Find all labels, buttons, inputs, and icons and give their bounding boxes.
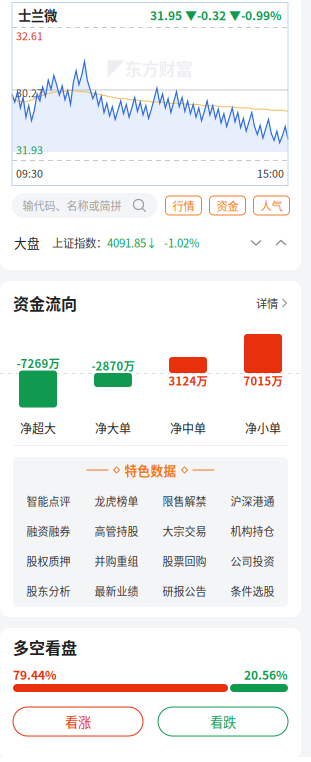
button[interactable]: 最新业绩 (82, 576, 150, 606)
staticText: 研报公告 (162, 583, 206, 599)
staticText: 79.44% (13, 666, 57, 683)
button[interactable]: 融资融券 (14, 516, 82, 546)
staticText: 4091.85↓ (107, 234, 157, 251)
button[interactable]: 看涨 (13, 707, 143, 736)
staticText: 行情 (172, 197, 194, 214)
staticText: 15:00 (257, 165, 284, 181)
button[interactable]: 搜索股票 (11, 193, 157, 218)
staticText: 人气 (260, 197, 282, 214)
staticText: -7269万 (16, 355, 59, 371)
button[interactable]: 人气 (253, 196, 289, 215)
staticText: 士兰微 (18, 5, 57, 25)
staticText: 大盘 (14, 233, 40, 252)
staticText: 公司投资 (230, 553, 274, 569)
button[interactable]: 研报公告 (150, 576, 218, 606)
staticText: 上证指数： (52, 234, 107, 251)
staticText: 31.95 ▼-0.32 ▼-0.99% (150, 6, 282, 24)
staticText: 输代码、名称或简拼 (22, 197, 121, 213)
button[interactable]: 看跌 (158, 707, 288, 736)
button[interactable]: 向下 (250, 237, 262, 248)
button[interactable]: 向上 (275, 237, 287, 248)
staticText: -1.02% (164, 234, 199, 251)
staticText: 智能点评 (26, 493, 70, 509)
staticText: 7015万 (243, 372, 282, 389)
staticText: 沪深港通 (230, 493, 274, 509)
staticText: 融资融券 (26, 523, 70, 539)
button[interactable]: 限售解禁 (150, 486, 218, 516)
button[interactable]: 并购重组 (82, 546, 150, 576)
staticText: 龙虎榜单 (94, 493, 138, 509)
staticText: 31.93 (16, 142, 43, 157)
staticText: 大宗交易 (162, 523, 206, 539)
button[interactable]: 股票回购 (150, 546, 218, 576)
staticText: 3124万 (168, 372, 207, 389)
staticText: 机构持仓 (230, 523, 274, 539)
staticText: 并购重组 (94, 553, 138, 569)
staticText: 股权质押 (26, 553, 70, 569)
staticText: 看涨 (65, 712, 91, 731)
button[interactable]: 公司投资 (218, 546, 286, 576)
button[interactable]: 条件选股 (218, 576, 286, 606)
staticText: 资金流向 (13, 291, 77, 315)
staticText: 限售解禁 (162, 493, 206, 509)
button[interactable]: 沪深港通 (218, 486, 286, 516)
button[interactable]: 智能点评 (14, 486, 82, 516)
button[interactable]: 行情 (165, 196, 201, 215)
staticText: 净超大 (20, 419, 56, 437)
staticText: 特色数据 (124, 461, 176, 479)
button[interactable]: 详情 (256, 295, 288, 311)
button[interactable]: 资金 (209, 196, 245, 215)
staticText: 09:30 (16, 165, 43, 181)
staticText: ◤东方财富 (107, 55, 192, 81)
staticText: -2870万 (91, 357, 134, 374)
button[interactable]: 股权质押 (14, 546, 82, 576)
staticText: 净小单 (245, 419, 281, 437)
staticText: 股东分析 (26, 583, 70, 599)
staticText: 多空看盘 (13, 635, 77, 659)
staticText: 30.27 (16, 85, 43, 100)
staticText: 看跌 (210, 712, 236, 731)
staticText: 条件选股 (230, 583, 274, 599)
staticText: 详情 (256, 295, 278, 311)
staticText: 股票回购 (162, 553, 206, 569)
staticText: 资金 (216, 197, 238, 214)
staticText: 32.61 (16, 28, 43, 43)
button[interactable]: 机构持仓 (218, 516, 286, 546)
staticText: 净中单 (170, 419, 206, 437)
staticText: 20.56% (244, 666, 288, 683)
staticText: 最新业绩 (94, 583, 138, 599)
button[interactable]: 大宗交易 (150, 516, 218, 546)
button[interactable]: 龙虎榜单 (82, 486, 150, 516)
staticText: 高管持股 (94, 523, 138, 539)
button[interactable]: 高管持股 (82, 516, 150, 546)
staticText: 净大单 (95, 419, 131, 437)
button[interactable]: 股东分析 (14, 576, 82, 606)
